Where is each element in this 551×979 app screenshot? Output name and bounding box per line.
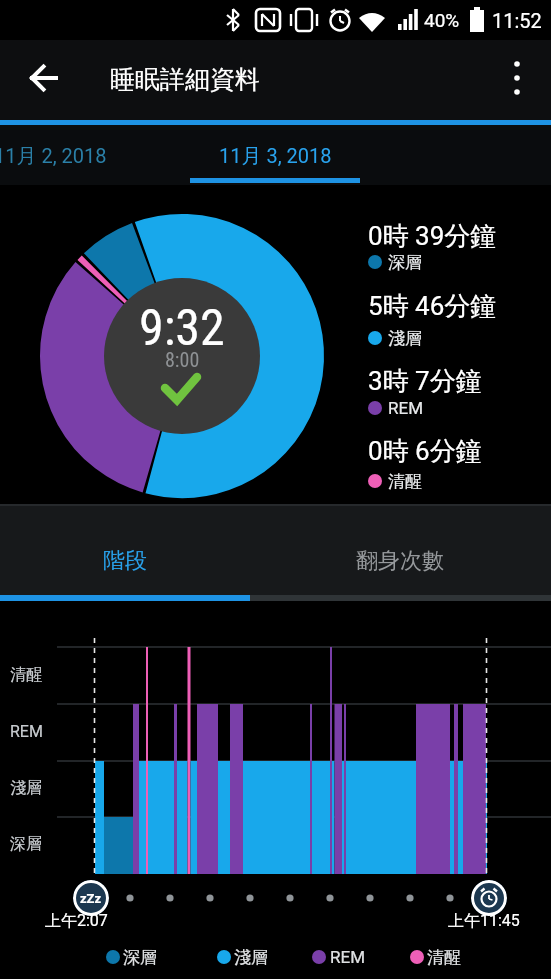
staticText: 淺層 — [388, 328, 422, 349]
button[interactable] — [0, 506, 250, 601]
staticText: 深層 — [388, 252, 422, 273]
staticText: 清醒 — [388, 471, 422, 492]
staticText: 上午11:45 — [448, 911, 520, 931]
staticText: 11:52 — [492, 9, 542, 32]
button[interactable] — [495, 52, 539, 104]
staticText: 11月 3, 2018 — [219, 144, 332, 169]
staticText: REM — [330, 947, 365, 967]
staticText: 5時 46分鐘 — [368, 290, 497, 323]
button[interactable] — [16, 52, 68, 104]
staticText: 11月 2, 2018 — [0, 144, 107, 169]
button[interactable]: zZz — [73, 880, 109, 916]
button[interactable] — [190, 125, 360, 185]
button[interactable] — [251, 506, 551, 601]
staticText: 階段 — [103, 547, 147, 575]
staticText: 0時 39分鐘 — [368, 220, 497, 253]
staticText: 深層 — [10, 834, 42, 854]
staticText: 40% — [424, 9, 460, 31]
staticText: 睡眠詳細資料 — [110, 64, 260, 95]
staticText: REM — [388, 398, 423, 418]
staticText: 9:32 — [139, 299, 225, 358]
staticText: 上午2:07 — [45, 911, 108, 931]
staticText: 0時 6分鐘 — [368, 435, 482, 468]
staticText: 3時 7分鐘 — [368, 365, 482, 398]
staticText: 淺層 — [234, 947, 268, 968]
staticText: zZz — [80, 891, 102, 906]
staticText: 深層 — [123, 947, 157, 968]
staticText: 淺層 — [10, 778, 42, 798]
staticText: 翻身次數 — [356, 547, 444, 575]
button[interactable] — [471, 880, 507, 916]
staticText: 清醒 — [10, 665, 42, 685]
staticText: 8:00 — [165, 348, 200, 371]
staticText: 清醒 — [427, 947, 461, 968]
staticText: REM — [10, 722, 43, 741]
button[interactable] — [0, 125, 160, 185]
